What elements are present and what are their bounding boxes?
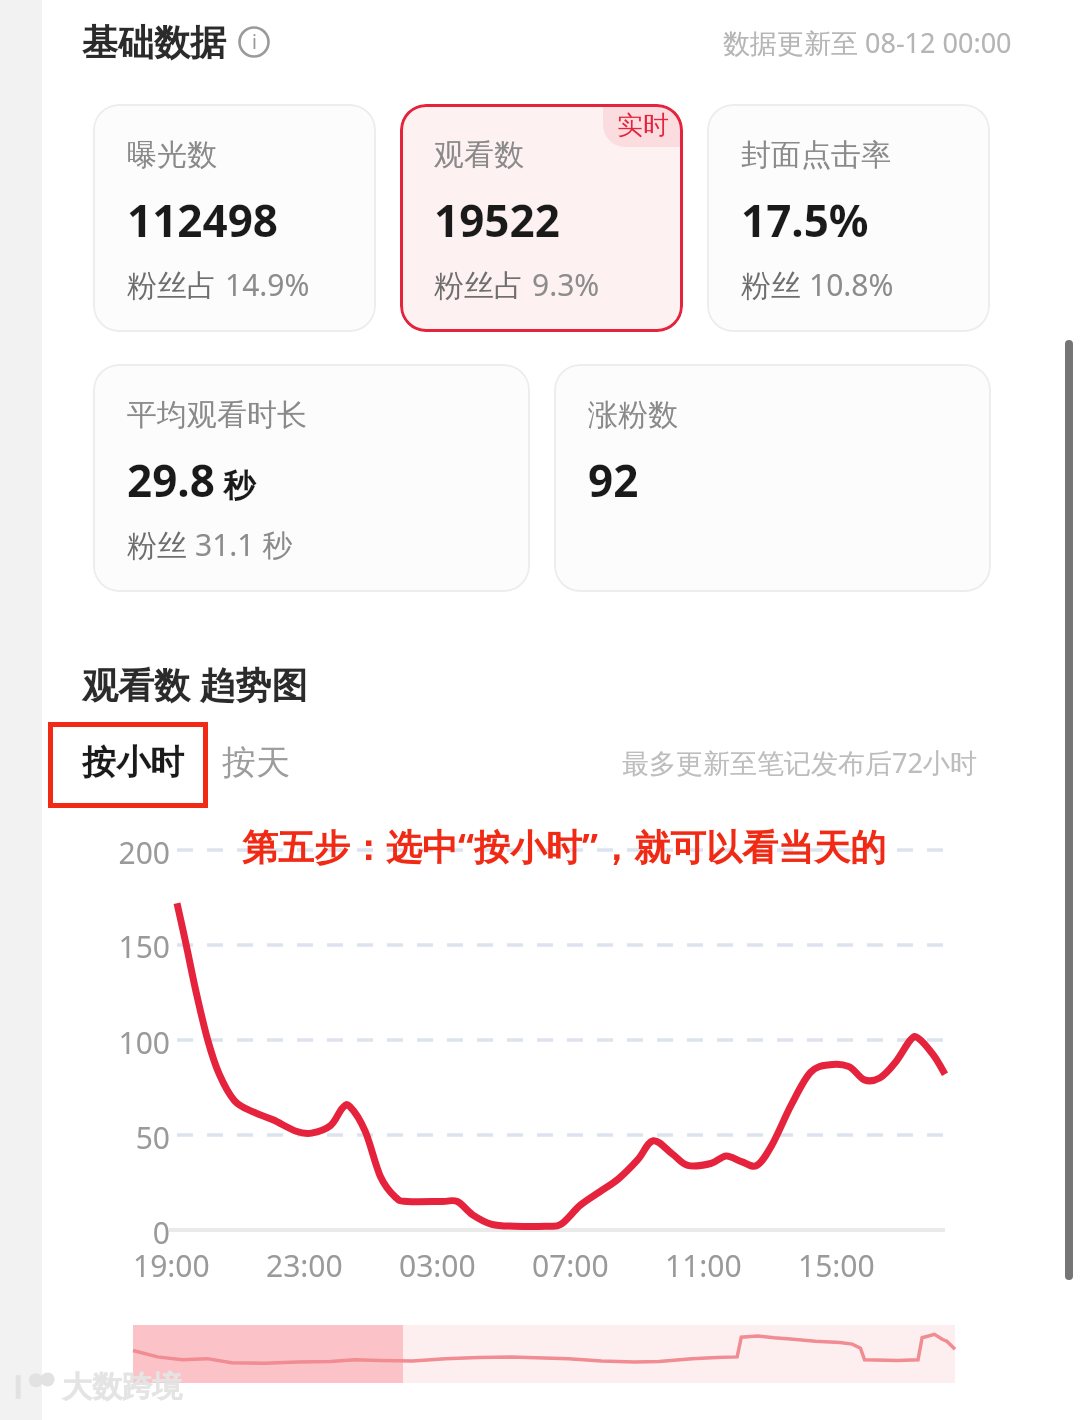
- staticText: 涨粉数: [588, 396, 678, 434]
- staticText: 19:00: [133, 1245, 210, 1286]
- staticText: 粉丝: [741, 264, 809, 305]
- staticText: 基础数据: [82, 20, 226, 65]
- staticText: 07:00: [532, 1245, 609, 1286]
- staticText: 11:00: [665, 1245, 742, 1286]
- staticText: 150: [70, 926, 170, 967]
- staticText: 23:00: [266, 1245, 343, 1286]
- button[interactable]: 说明: [238, 26, 270, 58]
- staticText: 19522: [434, 190, 560, 250]
- staticText: 50: [70, 1117, 170, 1158]
- button[interactable]: 曝光数: [93, 104, 376, 332]
- staticText: 112498: [127, 190, 279, 250]
- staticText: 31.1 秒: [195, 524, 293, 565]
- staticText: 100: [70, 1022, 170, 1063]
- staticText: 粉丝占: [434, 264, 532, 305]
- staticText: 0: [70, 1212, 170, 1253]
- staticText: 观看数: [434, 136, 524, 174]
- staticText: 15:00: [798, 1245, 875, 1286]
- button[interactable]: 封面点击率: [707, 104, 990, 332]
- staticText: 17.5%: [741, 190, 869, 250]
- staticText: 14.9%: [225, 264, 310, 305]
- staticText: 曝光数: [127, 136, 217, 174]
- staticText: i: [252, 29, 257, 55]
- staticText: 观看数 趋势图: [82, 660, 308, 709]
- staticText: 按天: [222, 741, 290, 784]
- staticText: 200: [70, 832, 170, 873]
- staticText: 10.8%: [809, 264, 894, 305]
- staticText: 92: [588, 450, 639, 510]
- staticText: 03:00: [399, 1245, 476, 1286]
- staticText: 大数跨境: [62, 1368, 182, 1406]
- button[interactable]: 按天: [222, 741, 290, 784]
- staticText: 最多更新至笔记发布后72小时: [622, 744, 977, 781]
- button[interactable]: 按小时: [82, 741, 184, 784]
- staticText: 29.8: [127, 450, 215, 510]
- staticText: 实时: [617, 109, 669, 142]
- staticText: 粉丝: [127, 524, 195, 565]
- staticText: 封面点击率: [741, 136, 891, 174]
- staticText: 粉丝占: [127, 264, 225, 305]
- staticText: 秒: [215, 463, 256, 507]
- button[interactable]: 实时: [400, 104, 683, 332]
- button[interactable]: 涨粉数: [554, 364, 991, 592]
- staticText: 9.3%: [532, 264, 600, 305]
- staticText: 平均观看时长: [127, 396, 307, 434]
- staticText: 按小时: [82, 741, 184, 784]
- staticText: 数据更新至 08-12 00:00: [723, 24, 1012, 61]
- staticText: 第五步：选中“按小时”，就可以看当天的: [242, 822, 887, 871]
- button[interactable]: 平均观看时长: [93, 364, 530, 592]
